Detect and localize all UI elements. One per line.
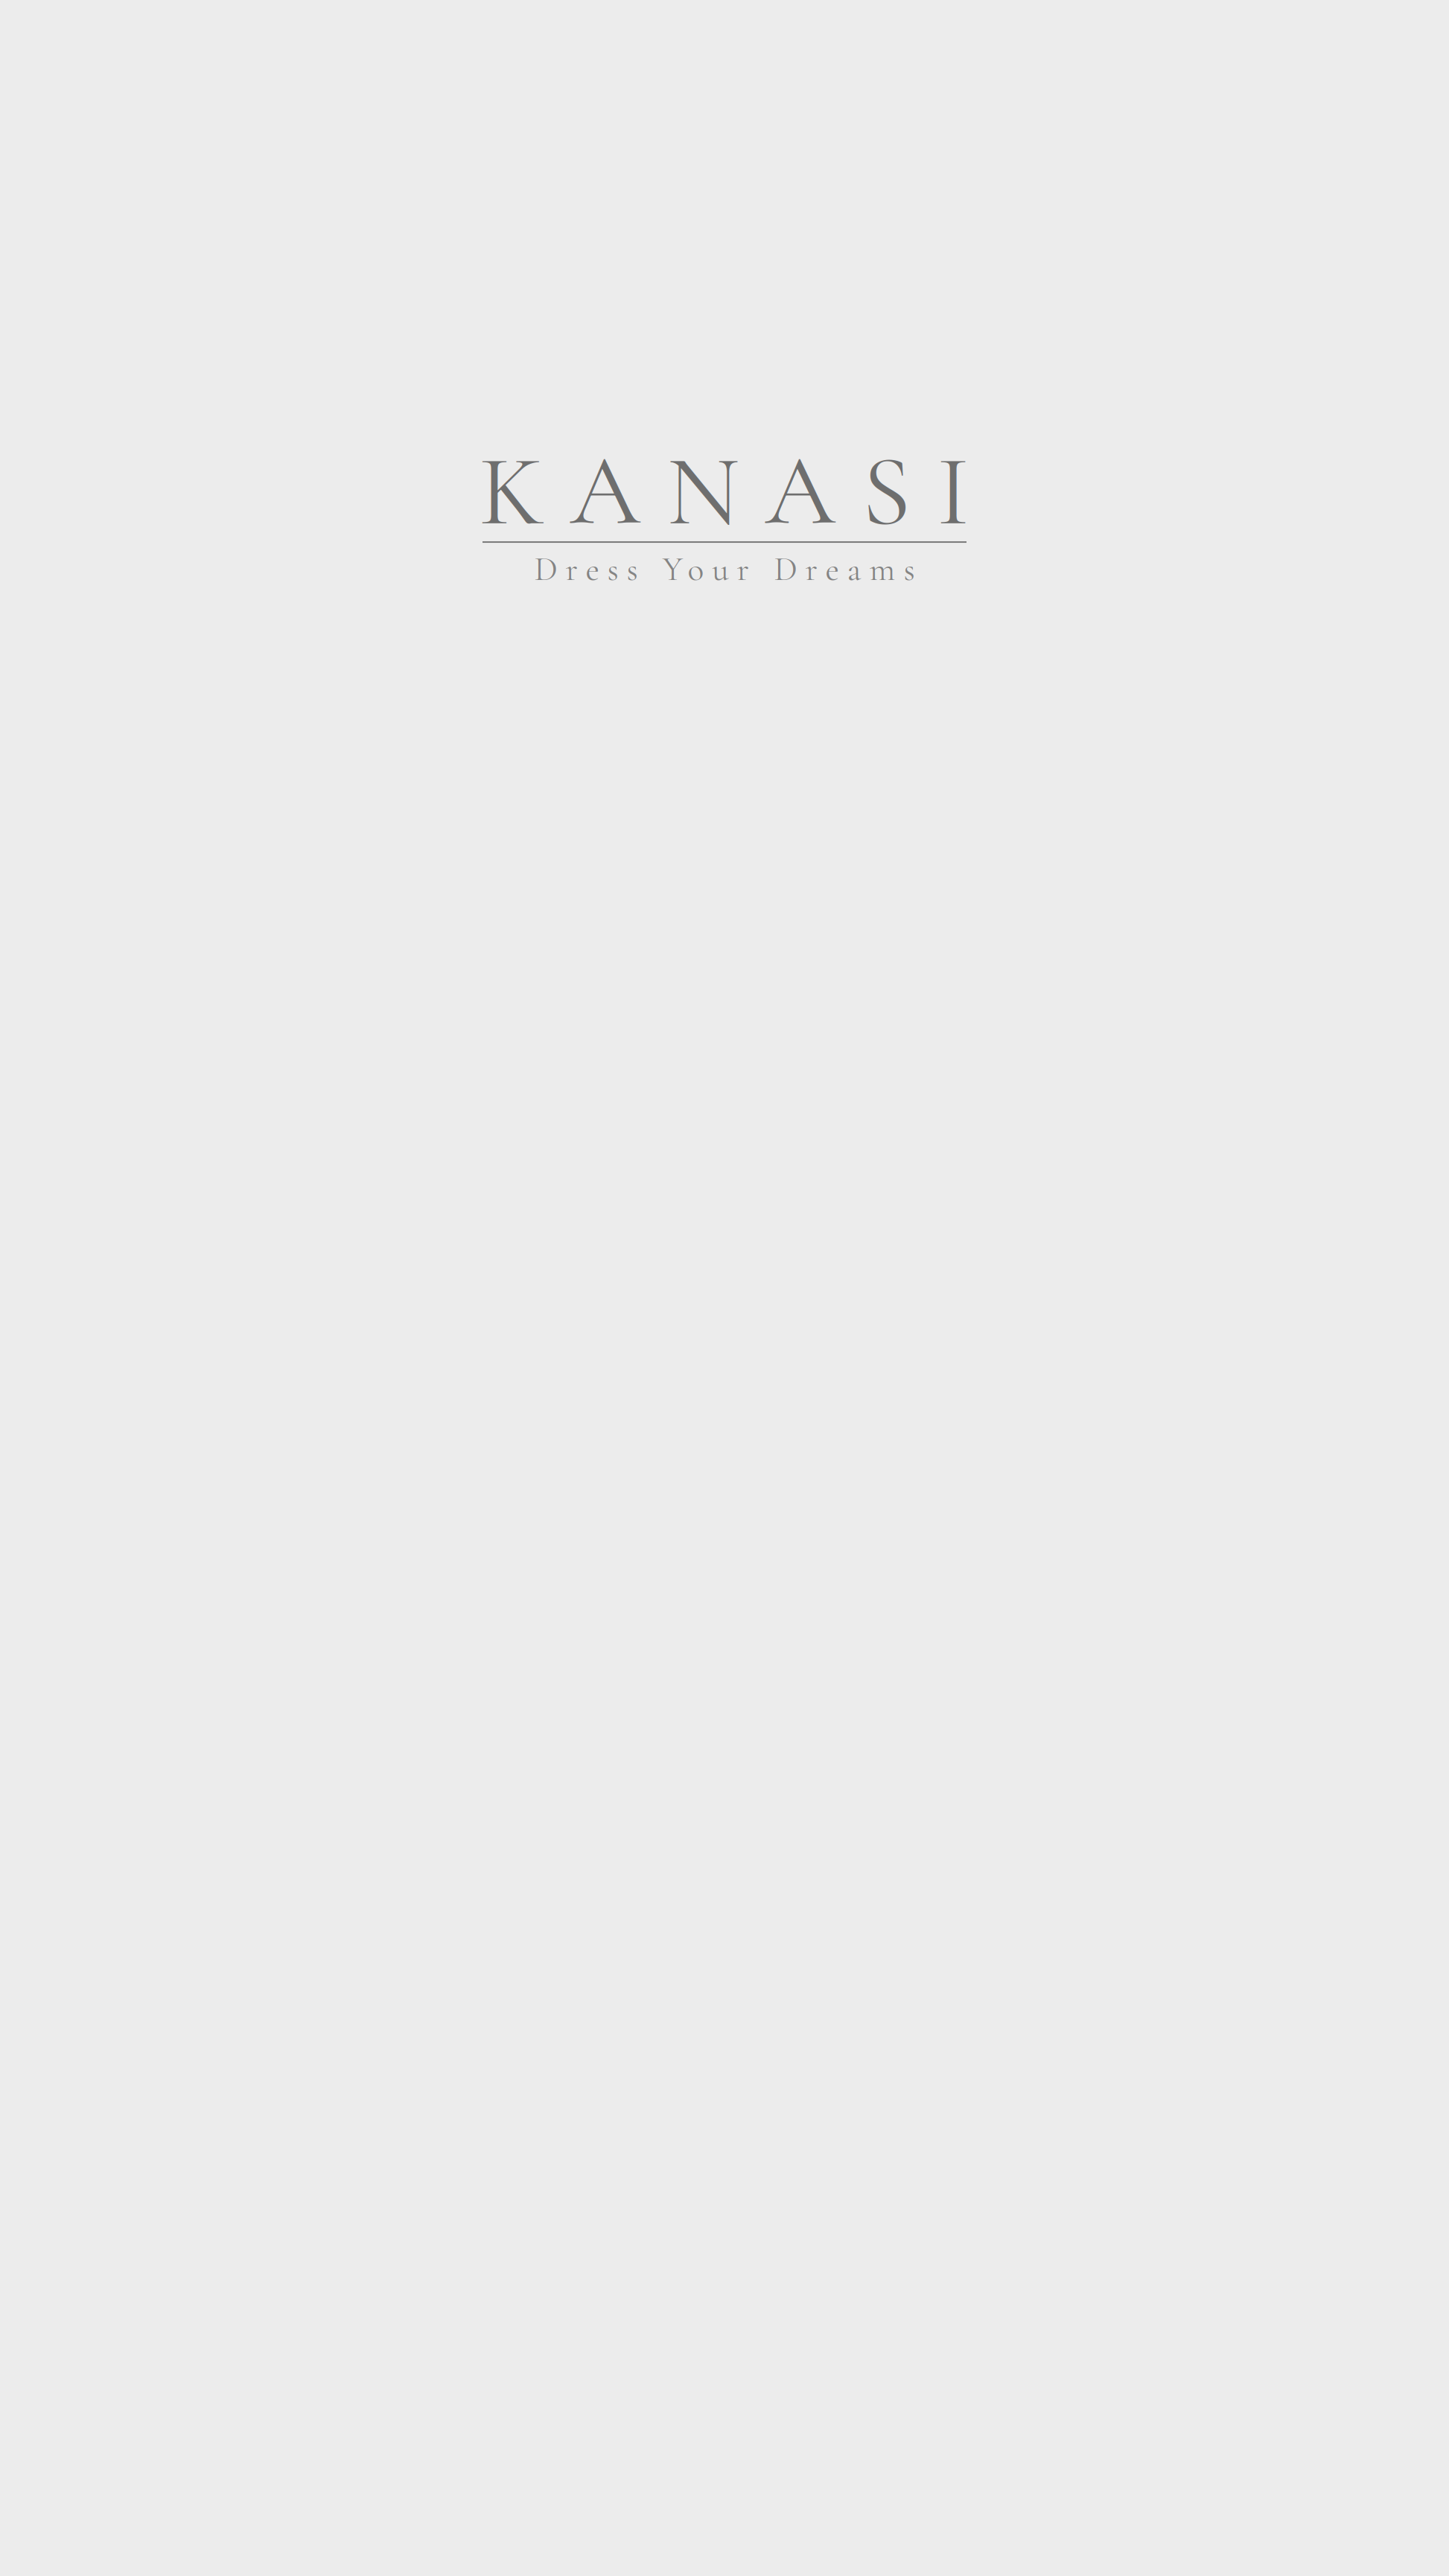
- staticText: Dress Your Dreams: [534, 549, 915, 590]
- staticText: KANASI: [479, 430, 970, 552]
